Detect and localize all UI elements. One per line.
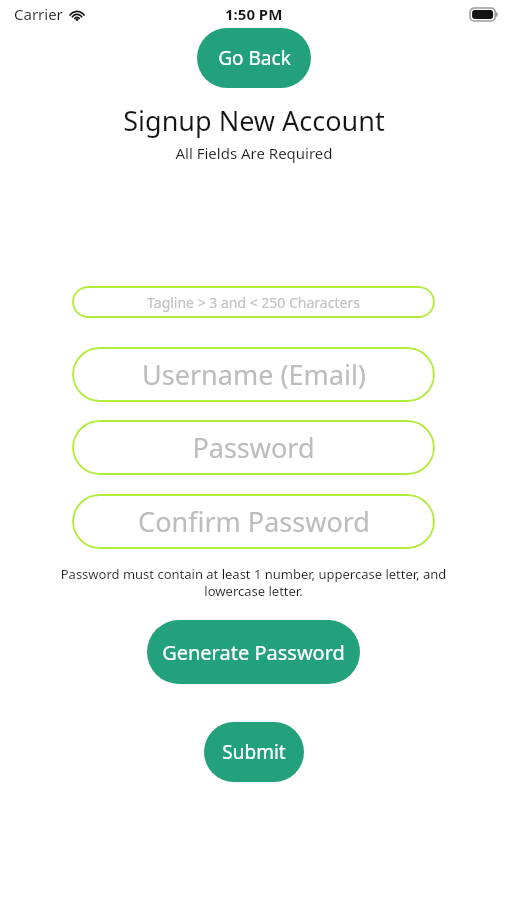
staticText: Tagline > 3 and < 250 Characters — [147, 293, 360, 312]
button[interactable]: Password — [72, 420, 435, 475]
button[interactable]: Tagline > 3 and < 250 Characters — [72, 286, 435, 318]
button[interactable]: Generate Password — [147, 620, 360, 684]
staticText: Generate Password — [162, 639, 345, 666]
staticText: Carrier — [14, 4, 63, 24]
button[interactable]: Username (Email) — [72, 347, 435, 402]
staticText: Signup New Account — [123, 102, 385, 139]
staticText: Password must contain at least 1 number,… — [40, 565, 467, 600]
staticText: Submit — [222, 739, 286, 765]
staticText: 1:50 PM — [225, 4, 283, 24]
button[interactable]: Confirm Password — [72, 494, 435, 549]
button[interactable]: Go Back — [197, 28, 311, 88]
staticText: Username (Email) — [142, 356, 366, 393]
staticText: Password — [192, 429, 315, 466]
staticText: Go Back — [218, 45, 291, 71]
staticText: Confirm Password — [138, 503, 370, 540]
staticText: All Fields Are Required — [175, 143, 333, 163]
button[interactable]: Submit — [204, 722, 304, 782]
